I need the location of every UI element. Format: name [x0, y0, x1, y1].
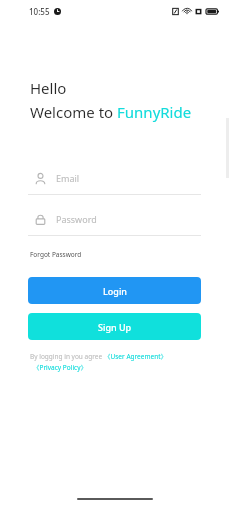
- staticText: 10:55: [29, 6, 50, 17]
- staticText: Hello: [30, 78, 67, 98]
- other: Password: [34, 213, 47, 226]
- button[interactable]: Forgot Password: [30, 248, 82, 261]
- button[interactable]: 《User Agreement》: [104, 352, 168, 361]
- staticText: By logging in you agree: [30, 352, 104, 361]
- staticText: Login: [103, 285, 127, 297]
- staticText: Welcome to FunnyRide: [30, 102, 192, 122]
- button[interactable]: Login: [28, 277, 201, 304]
- staticText: 《Privacy Policy》: [33, 363, 88, 372]
- staticText: Sign Up: [98, 321, 132, 333]
- staticText: Forgot Password: [30, 250, 82, 259]
- button[interactable]: Email: [28, 162, 201, 194]
- staticText: Email: [56, 172, 80, 184]
- button[interactable]: Password: [28, 203, 201, 235]
- staticText: Password: [56, 213, 97, 225]
- button[interactable]: Sign Up: [28, 313, 201, 340]
- button[interactable]: 《Privacy Policy》: [33, 363, 88, 372]
- staticText: 《User Agreement》: [104, 352, 168, 361]
- other: Email: [34, 172, 47, 185]
